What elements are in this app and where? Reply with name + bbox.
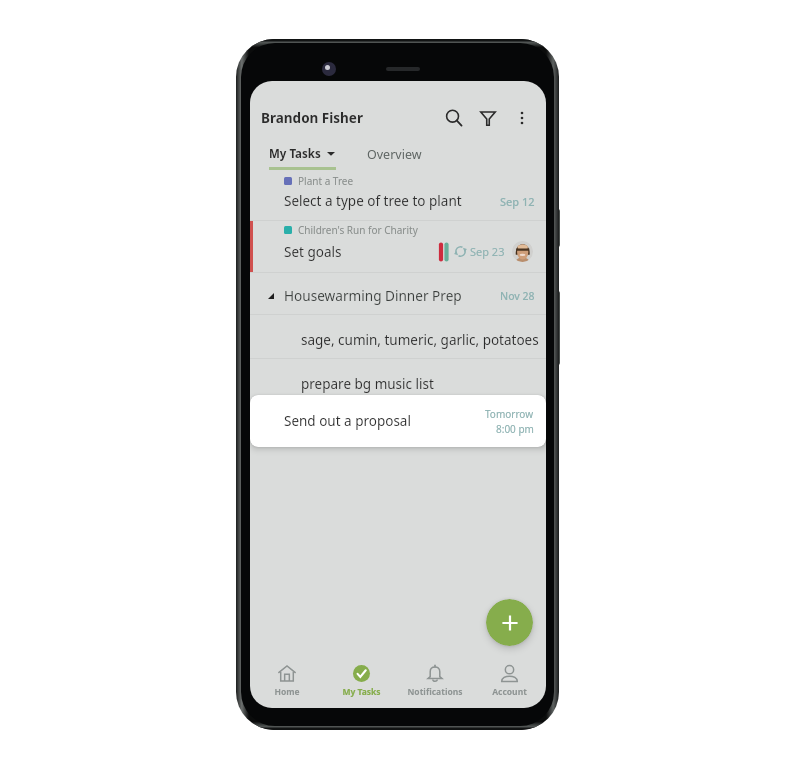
button[interactable]: More options bbox=[505, 103, 539, 133]
staticText: Tomorrow bbox=[485, 407, 534, 421]
staticText: Nov 28 bbox=[500, 289, 535, 303]
staticText: Overview bbox=[367, 146, 422, 163]
button[interactable]: Home bbox=[250, 658, 324, 708]
staticText: Brandon Fisher bbox=[261, 109, 363, 127]
staticText: Home bbox=[274, 686, 300, 698]
button[interactable]: Send out a proposal bbox=[250, 395, 546, 447]
staticText: Housewarming Dinner Prep bbox=[284, 286, 462, 305]
staticText: Send out a proposal bbox=[284, 412, 411, 430]
staticText: My Tasks bbox=[342, 686, 381, 698]
button[interactable]: Notifications bbox=[398, 658, 472, 708]
button[interactable]: prepare bg music list bbox=[250, 359, 546, 402]
staticText: 8:00 pm bbox=[496, 422, 534, 436]
button[interactable]: Search bbox=[437, 103, 471, 133]
staticText: Sep 23 bbox=[470, 244, 505, 259]
staticText: Children's Run for Charity bbox=[298, 223, 418, 237]
button[interactable]: Filter bbox=[471, 103, 505, 133]
staticText: Notifications bbox=[407, 686, 463, 698]
button[interactable]: My Tasks bbox=[269, 138, 335, 170]
button[interactable]: Plant a Tree bbox=[250, 170, 546, 220]
staticText: Select a type of tree to plant bbox=[284, 192, 462, 210]
staticText: Account bbox=[492, 686, 527, 698]
staticText: Set goals bbox=[284, 243, 342, 261]
button[interactable]: Housewarming Dinner Prep bbox=[250, 273, 546, 314]
button[interactable]: Overview bbox=[367, 138, 422, 170]
button[interactable]: Account bbox=[472, 658, 546, 708]
button[interactable]: sage, cumin, tumeric, garlic, potatoes bbox=[250, 315, 546, 358]
button[interactable]: My Tasks bbox=[324, 658, 398, 708]
button[interactable]: Add task bbox=[486, 599, 533, 646]
staticText: My Tasks bbox=[269, 146, 321, 162]
staticText: Sep 12 bbox=[500, 194, 535, 209]
staticText: Plant a Tree bbox=[298, 174, 354, 188]
staticText: prepare bg music list bbox=[301, 375, 434, 393]
button[interactable]: Children's Run for Charity bbox=[250, 221, 546, 272]
staticText: sage, cumin, tumeric, garlic, potatoes bbox=[301, 331, 539, 349]
